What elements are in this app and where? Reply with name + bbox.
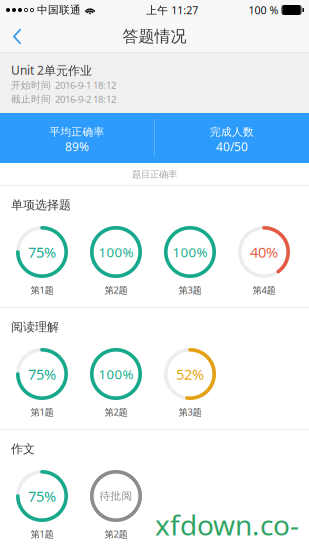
staticText: 阅读理解 [11,320,59,334]
staticText: 第3题 [178,284,201,296]
staticText: 100% [98,365,133,383]
staticText: 第1题 [30,406,53,418]
staticText: 第2题 [104,284,127,296]
staticText: Unit 2单元作业 [11,62,92,78]
button[interactable]: Back [0,20,34,53]
staticText: 单项选择题 [11,198,71,212]
staticText: 52% [176,364,204,384]
staticText: 答题情况 [122,27,186,46]
staticText: 75% [28,486,56,506]
staticText: 第1题 [30,528,53,540]
staticText: 第2题 [104,528,127,540]
staticText: 完成人数 [210,125,254,138]
staticText: 上午 11:27 [146,3,198,17]
staticText: 开始时间 2016-9-1 18:12 [11,78,116,92]
staticText: 40% [250,242,278,262]
staticText: 100% [172,243,207,261]
staticText: 100% [98,243,133,261]
staticText: 中国联通 [34,3,84,16]
staticText: 第1题 [30,284,53,296]
staticText: 作文 [11,442,35,456]
staticText: 第4题 [252,284,275,296]
staticText: 待批阅 [99,489,132,502]
staticText: xfdown.com [155,506,299,550]
staticText: 40/50 [216,138,248,154]
staticText: 第2题 [104,406,127,418]
staticText: 75% [28,364,56,384]
staticText: 第3题 [178,406,201,418]
staticText: 75% [28,242,56,262]
staticText: 100 % [248,3,281,17]
staticText: 截止时间 2016-9-2 18:12 [11,92,116,106]
staticText: 89% [65,138,89,154]
staticText: 题目正确率 [132,169,177,180]
staticText: 平均正确率 [49,125,104,138]
